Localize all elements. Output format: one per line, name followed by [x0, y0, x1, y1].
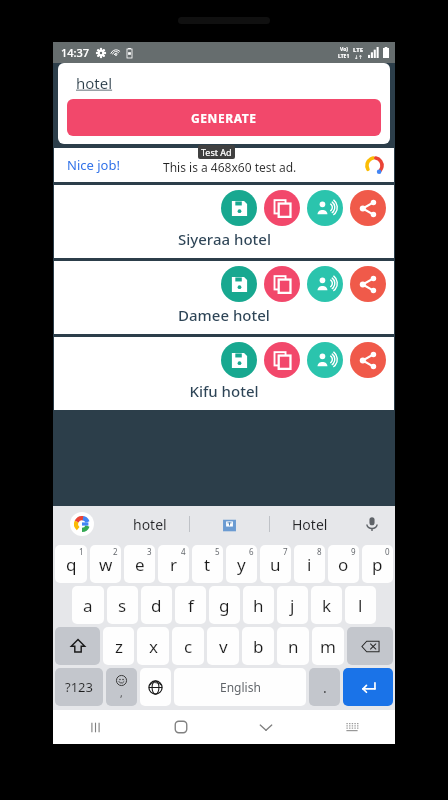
staticText: r	[170, 553, 178, 576]
button[interactable]: Copy	[264, 342, 300, 378]
staticText: f	[188, 594, 194, 617]
button[interactable]: hotel	[111, 506, 189, 542]
staticText: 0	[385, 546, 390, 557]
button[interactable]: y	[226, 545, 257, 583]
staticText: Hotel	[292, 515, 328, 534]
button[interactable]: Save	[221, 342, 257, 378]
button[interactable]: b	[242, 627, 274, 665]
staticText: ,	[120, 686, 123, 700]
staticText: hotel	[133, 515, 167, 534]
button[interactable]: Share	[350, 190, 386, 226]
button[interactable]: z	[103, 627, 134, 665]
button[interactable]: Language	[140, 668, 171, 706]
button[interactable]: q	[55, 545, 87, 583]
staticText: d	[151, 594, 162, 617]
staticText: t	[204, 553, 211, 576]
button[interactable]: u	[260, 545, 291, 583]
staticText: e	[135, 553, 145, 576]
staticText: v	[219, 635, 228, 658]
button[interactable]: Home	[138, 710, 223, 744]
button[interactable]: t	[192, 545, 223, 583]
button[interactable]: Recents	[53, 710, 138, 744]
button[interactable]: w	[90, 545, 121, 583]
staticText: hotel	[76, 73, 113, 93]
staticText: p	[372, 553, 383, 576]
button[interactable]: Speak	[307, 190, 343, 226]
button[interactable]: h	[243, 586, 274, 624]
button[interactable]: Backspace	[347, 627, 393, 665]
button[interactable]: f	[175, 586, 206, 624]
button[interactable]: m	[312, 627, 344, 665]
button[interactable]: Emoji	[106, 668, 137, 706]
staticText: g	[219, 594, 230, 617]
staticText: a	[83, 594, 93, 617]
staticText: j	[290, 594, 295, 617]
staticText: This is a 468x60 test ad.	[163, 159, 297, 175]
button[interactable]: Save	[221, 266, 257, 302]
button[interactable]: English	[174, 668, 306, 706]
button[interactable]: r	[158, 545, 189, 583]
staticText: Nice job!	[67, 156, 120, 174]
button[interactable]: Hotel	[270, 506, 349, 542]
button[interactable]: Save	[54, 261, 394, 334]
button[interactable]: n	[277, 627, 309, 665]
button[interactable]: e	[124, 545, 155, 583]
button[interactable]: s	[107, 586, 138, 624]
staticText: u	[270, 553, 281, 576]
button[interactable]: Share	[350, 342, 386, 378]
button[interactable]: o	[328, 545, 359, 583]
button[interactable]: Save	[54, 185, 394, 258]
button[interactable]: Voice input	[349, 506, 395, 542]
button[interactable]: Hide keyboard	[223, 710, 309, 744]
button[interactable]: Copy	[264, 266, 300, 302]
button[interactable]: Copy	[264, 190, 300, 226]
staticText: Damee hotel	[178, 305, 270, 325]
staticText: 14:37	[61, 45, 90, 60]
staticText: y	[237, 553, 246, 576]
staticText: n	[288, 635, 299, 658]
button[interactable]: Speak	[307, 266, 343, 302]
button[interactable]: Save	[221, 190, 257, 226]
staticText: 6	[249, 546, 254, 557]
button[interactable]: Enter	[343, 668, 393, 706]
button[interactable]: GENERATE	[67, 99, 381, 136]
button[interactable]: v	[207, 627, 239, 665]
button[interactable]: Google	[70, 512, 94, 536]
staticText: 2	[113, 546, 118, 557]
button[interactable]: j	[277, 586, 308, 624]
staticText: s	[118, 594, 127, 617]
button[interactable]: i	[294, 545, 325, 583]
staticText: LTE	[353, 46, 364, 54]
button[interactable]: Shift	[55, 627, 100, 665]
button[interactable]: hotel	[76, 73, 113, 93]
button[interactable]: Save	[54, 337, 394, 410]
button[interactable]: l	[345, 586, 376, 624]
staticText: .	[323, 678, 327, 697]
staticText: LTE1	[338, 53, 350, 60]
staticText: Vo)	[340, 46, 348, 53]
staticText: 7	[283, 546, 288, 557]
staticText: x	[149, 635, 158, 658]
staticText: q	[66, 553, 77, 576]
staticText: c	[184, 635, 193, 658]
button[interactable]: g	[209, 586, 240, 624]
staticText: Kifu hotel	[189, 381, 259, 401]
staticText: m	[320, 635, 336, 658]
button[interactable]: d	[141, 586, 172, 624]
button[interactable]: Speak	[307, 342, 343, 378]
staticText: 4	[181, 546, 186, 557]
button[interactable]: Nice job!	[54, 148, 394, 182]
staticText: ?123	[65, 678, 93, 696]
staticText: GENERATE	[191, 110, 257, 126]
button[interactable]: c	[172, 627, 204, 665]
button[interactable]: Share	[350, 266, 386, 302]
button[interactable]: k	[311, 586, 342, 624]
button[interactable]: a	[72, 586, 104, 624]
button[interactable]: p	[362, 545, 393, 583]
button[interactable]: Hotel emoji	[190, 506, 269, 542]
button[interactable]: x	[137, 627, 169, 665]
button[interactable]: ?123	[55, 668, 103, 706]
staticText: z	[115, 635, 123, 658]
button[interactable]: Switch keyboard	[309, 710, 395, 744]
button[interactable]: .	[309, 668, 340, 706]
